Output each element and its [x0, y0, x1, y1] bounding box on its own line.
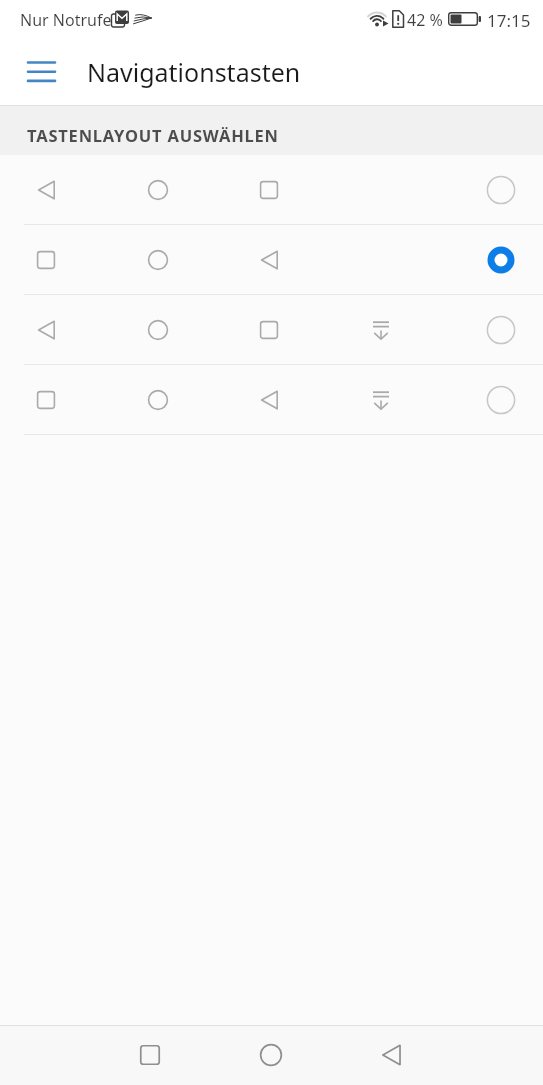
staticText: Nur Notrufe — [20, 9, 112, 31]
button[interactable] — [0, 295, 543, 365]
button[interactable] — [367, 1031, 415, 1079]
staticText: 42 % — [407, 9, 443, 31]
staticText: 17:15 — [487, 9, 531, 32]
button[interactable] — [18, 48, 66, 96]
button[interactable] — [247, 1031, 295, 1079]
button[interactable] — [0, 365, 543, 435]
staticText: Navigationstasten — [87, 55, 301, 89]
button[interactable] — [126, 1031, 174, 1079]
staticText: TASTENLAYOUT AUSWÄHLEN — [27, 124, 279, 146]
button[interactable] — [0, 225, 543, 295]
button[interactable] — [0, 155, 543, 225]
